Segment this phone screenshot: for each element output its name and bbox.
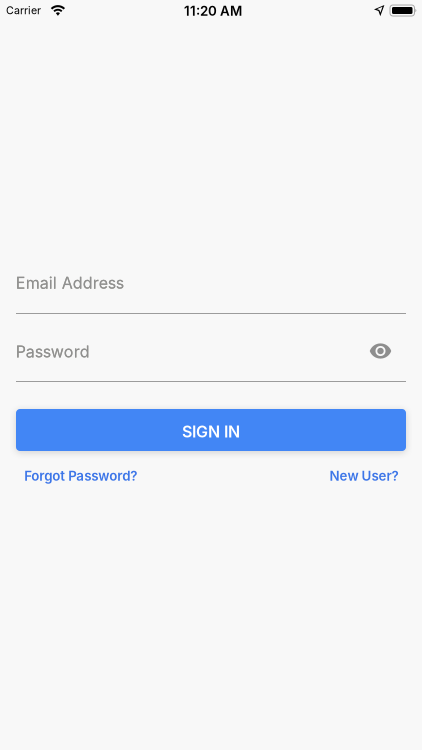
staticText: Email Address (16, 274, 124, 292)
button[interactable]: New User? (329, 468, 398, 484)
button[interactable]: Forgot Password? (24, 468, 137, 484)
staticText: SIGN IN (182, 422, 240, 441)
staticText: Carrier (6, 4, 41, 17)
staticText: Password (16, 342, 90, 361)
button[interactable]: SIGN IN (16, 409, 406, 451)
button[interactable]: Show password (368, 339, 392, 363)
staticText: Email Address (16, 274, 124, 292)
staticText: New User? (329, 468, 398, 484)
textField[interactable]: Email Address (16, 274, 406, 292)
staticText: Password (16, 342, 90, 361)
secureTextField[interactable]: Password (16, 342, 406, 361)
staticText: 11:20 AM (184, 3, 242, 19)
staticText: Forgot Password? (24, 468, 137, 484)
